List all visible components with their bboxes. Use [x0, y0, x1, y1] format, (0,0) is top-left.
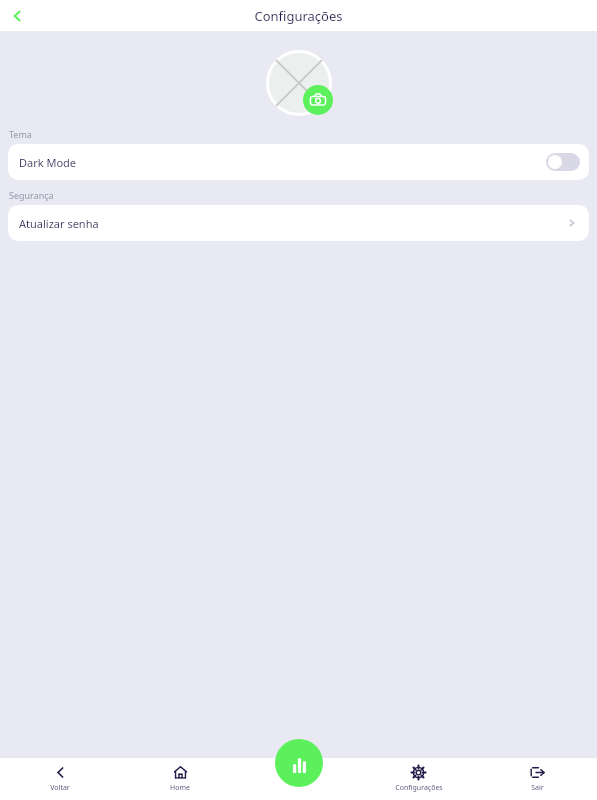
- staticText: Configurações: [254, 7, 343, 25]
- button[interactable]: Home: [120, 758, 240, 800]
- button[interactable]: Sair: [478, 758, 597, 800]
- staticText: Home: [170, 783, 190, 793]
- button[interactable]: Dark Mode toggle: [546, 153, 580, 171]
- staticText: Dark Mode: [19, 155, 77, 170]
- button[interactable]: Profile photo: [266, 50, 332, 116]
- staticText: Segurança: [9, 189, 54, 201]
- staticText: Tema: [9, 128, 32, 140]
- button[interactable]: Atualizar senha: [8, 205, 589, 241]
- staticText: Voltar: [50, 783, 70, 793]
- staticText: Sair: [531, 783, 544, 793]
- button[interactable]: Statistics: [275, 739, 323, 787]
- staticText: Atualizar senha: [19, 216, 99, 231]
- button[interactable]: Configurações: [359, 758, 478, 800]
- staticText: Configurações: [395, 783, 443, 793]
- button[interactable]: Back: [0, 0, 34, 31]
- button[interactable]: Dark Mode: [8, 144, 589, 180]
- button[interactable]: Change photo: [303, 85, 333, 115]
- button[interactable]: Voltar: [0, 758, 120, 800]
